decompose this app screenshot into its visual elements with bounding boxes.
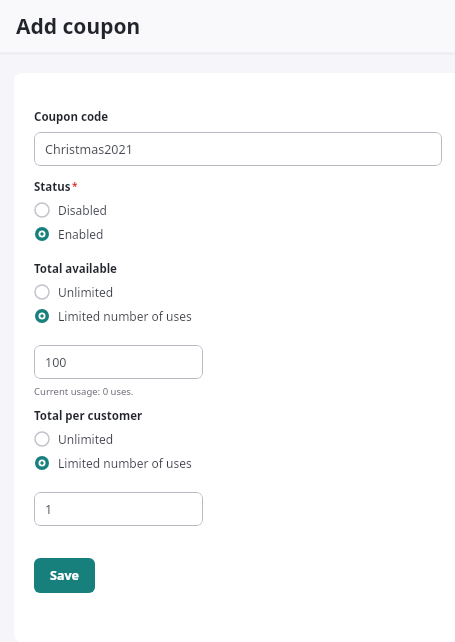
staticText: Unlimited <box>58 284 114 300</box>
staticText: * <box>72 179 78 193</box>
button[interactable]: Christmas2021 <box>34 132 442 166</box>
staticText: Disabled <box>58 202 107 218</box>
staticText: Save <box>50 567 79 584</box>
button[interactable]: Limited number of uses <box>34 304 442 328</box>
staticText: Limited number of uses <box>58 308 192 324</box>
staticText: Current usage: 0 uses. <box>34 385 134 398</box>
staticText: 100 <box>45 354 67 371</box>
button[interactable]: Unlimited <box>34 427 442 451</box>
staticText: Total per customer <box>34 408 143 424</box>
staticText: Coupon code <box>34 109 109 125</box>
staticText: Total available <box>34 261 117 277</box>
staticText: Enabled <box>58 226 104 242</box>
staticText: Add coupon <box>16 12 141 41</box>
staticText: Limited number of uses <box>58 455 192 471</box>
button[interactable]: Save <box>34 558 95 593</box>
staticText: Unlimited <box>58 431 114 447</box>
staticText: 1 <box>45 501 53 518</box>
staticText: Status <box>34 179 71 195</box>
button[interactable]: 100 <box>34 345 203 379</box>
button[interactable]: Disabled <box>34 198 442 222</box>
button[interactable]: Enabled <box>34 222 442 246</box>
button[interactable]: Limited number of uses <box>34 451 442 475</box>
button[interactable]: 1 <box>34 492 203 526</box>
button[interactable]: Unlimited <box>34 280 442 304</box>
staticText: Christmas2021 <box>45 141 133 158</box>
